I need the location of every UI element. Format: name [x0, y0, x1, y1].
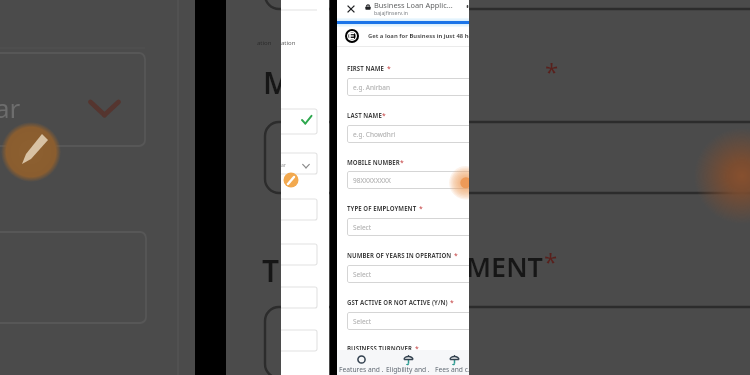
- staticText: bajajfinserv.in: [374, 9, 408, 16]
- staticText: ation: [281, 39, 296, 47]
- staticText: e.g. Chowdhri: [353, 130, 396, 139]
- staticText: Get a loan for Business in just 48 ho: [368, 32, 469, 40]
- button[interactable]: Select: [347, 312, 469, 330]
- staticText: T: [262, 250, 280, 291]
- staticText: TYPE OF EMPLOYMENT: [347, 204, 417, 212]
- staticText: *: [454, 251, 458, 260]
- staticText: *: [419, 204, 423, 213]
- staticText: MOBILE NUMBER: [347, 158, 400, 166]
- staticText: ar: [0, 90, 21, 125]
- staticText: *: [450, 298, 454, 307]
- staticText: 98XXXXXXXX: [353, 176, 391, 185]
- staticText: Select: [353, 223, 372, 232]
- staticText: M: [263, 62, 291, 103]
- staticText: Features and ...: [339, 365, 383, 374]
- staticText: *: [382, 111, 386, 120]
- staticText: e.g. Anirban: [353, 83, 391, 92]
- button[interactable]: e.g. Chowdhri: [347, 125, 469, 143]
- button[interactable]: Close: [343, 1, 358, 16]
- button[interactable]: Select: [347, 265, 469, 283]
- button[interactable]: Fees and c...: [432, 350, 469, 375]
- staticText: FIRST NAME: [347, 64, 385, 72]
- staticText: Eligbility and ...: [386, 365, 430, 374]
- staticText: Select: [353, 317, 372, 326]
- staticText: Business Loan Applic...: [374, 0, 453, 10]
- button[interactable]: Features and ...: [339, 350, 383, 375]
- staticText: ation: [257, 39, 272, 47]
- staticText: LAST NAME: [347, 111, 382, 119]
- staticText: *: [544, 245, 558, 278]
- staticText: NUMBER OF YEARS IN OPERATION: [347, 251, 452, 259]
- button[interactable]: e.g. Anirban: [347, 78, 469, 96]
- staticText: ar: [281, 162, 286, 169]
- staticText: *: [400, 158, 404, 167]
- staticText: *: [545, 55, 559, 88]
- button[interactable]: Eligbility and ...: [386, 350, 430, 375]
- staticText: MENT: [466, 248, 543, 285]
- button[interactable]: Select: [347, 218, 469, 236]
- staticText: GST ACTIVE OR NOT ACTIVE (Y/N): [347, 298, 448, 306]
- staticText: *: [387, 64, 391, 73]
- staticText: Select: [353, 270, 372, 279]
- staticText: *: [415, 344, 419, 353]
- button[interactable]: 98XXXXXXXX: [347, 171, 469, 189]
- staticText: BUSINESS TURNOVER: [347, 344, 413, 352]
- staticText: Fees and c...: [435, 365, 469, 374]
